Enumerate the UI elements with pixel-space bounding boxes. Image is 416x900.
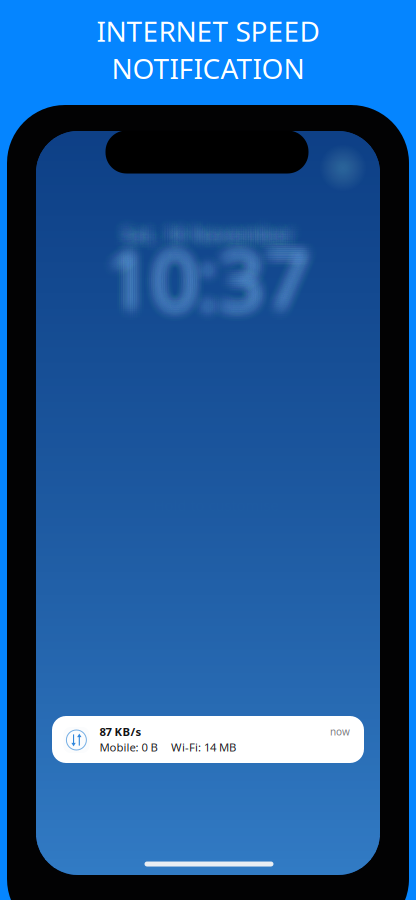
staticText: 10:37 <box>108 234 312 340</box>
staticText: 10:37 <box>99 230 303 337</box>
staticText: 10:37 <box>110 219 314 325</box>
staticText: 10:37 <box>110 232 314 338</box>
staticText: Sat, 18 November <box>115 231 288 258</box>
staticText: Sat, 18 November <box>127 231 300 258</box>
staticText: Sat, 18 November <box>116 226 289 252</box>
staticText: Sat, 18 November <box>115 212 288 239</box>
staticText: 10:37 <box>100 214 304 320</box>
staticText: Sat, 18 November <box>118 216 291 242</box>
staticText: 10:37 <box>97 225 301 331</box>
staticText: 10:37 <box>100 230 304 337</box>
staticText: 10:37 <box>117 234 321 340</box>
button[interactable]: 87 KB/s <box>52 716 364 763</box>
staticText: 10:37 <box>113 232 317 338</box>
staticText: 10:37 <box>97 230 301 337</box>
staticText: Sat, 18 November <box>120 214 293 240</box>
staticText: 10:37 <box>104 238 308 344</box>
staticText: 10:37 <box>106 230 310 337</box>
staticText: now <box>330 725 350 738</box>
staticText: 10:37 <box>110 230 314 337</box>
staticText: 10:37 <box>95 219 299 325</box>
staticText: Sat, 18 November <box>120 217 293 244</box>
staticText: 10:37 <box>117 223 321 329</box>
staticText: 10:37 <box>100 234 304 340</box>
staticText: Sat, 18 November <box>125 226 298 252</box>
staticText: Sat, 18 November <box>111 217 284 244</box>
staticText: Sat, 18 November <box>127 209 300 235</box>
staticText: 87 KB/s <box>99 724 141 739</box>
staticText: 10:37 <box>113 219 317 325</box>
staticText: Sat, 18 November <box>120 233 293 259</box>
staticText: Sat, 18 November <box>128 231 301 258</box>
staticText: 10:37 <box>113 217 317 324</box>
staticText: Sat, 18 November <box>128 219 301 246</box>
staticText: Sat, 18 November <box>115 219 288 246</box>
staticText: 10:37 <box>112 236 316 342</box>
staticText: 10:37 <box>104 229 308 335</box>
staticText: Sat, 18 November <box>132 222 305 249</box>
staticText: Sat, 18 November <box>113 231 286 258</box>
staticText: Sat, 18 November <box>123 226 296 252</box>
staticText: 10:37 <box>104 227 308 333</box>
staticText: Sat, 18 November <box>120 231 293 258</box>
staticText: Sat, 18 November <box>116 216 289 242</box>
staticText: Sat, 18 November <box>118 217 291 244</box>
staticText: Sat, 18 November <box>118 233 291 259</box>
staticText: 10:37 <box>99 225 303 331</box>
staticText: 10:37 <box>115 221 319 327</box>
staticText: Sat, 18 November <box>115 224 288 251</box>
staticText: 10:37 <box>117 225 321 331</box>
staticText: Sat, 18 November <box>127 228 300 254</box>
staticText: 10:37 <box>93 230 297 337</box>
staticText: Sat, 18 November <box>115 210 288 237</box>
staticText: Sat, 18 November <box>125 221 298 247</box>
staticText: Sat, 18 November <box>125 217 298 244</box>
staticText: Sat, 18 November <box>133 217 306 244</box>
staticText: Sat, 18 November <box>116 228 289 254</box>
